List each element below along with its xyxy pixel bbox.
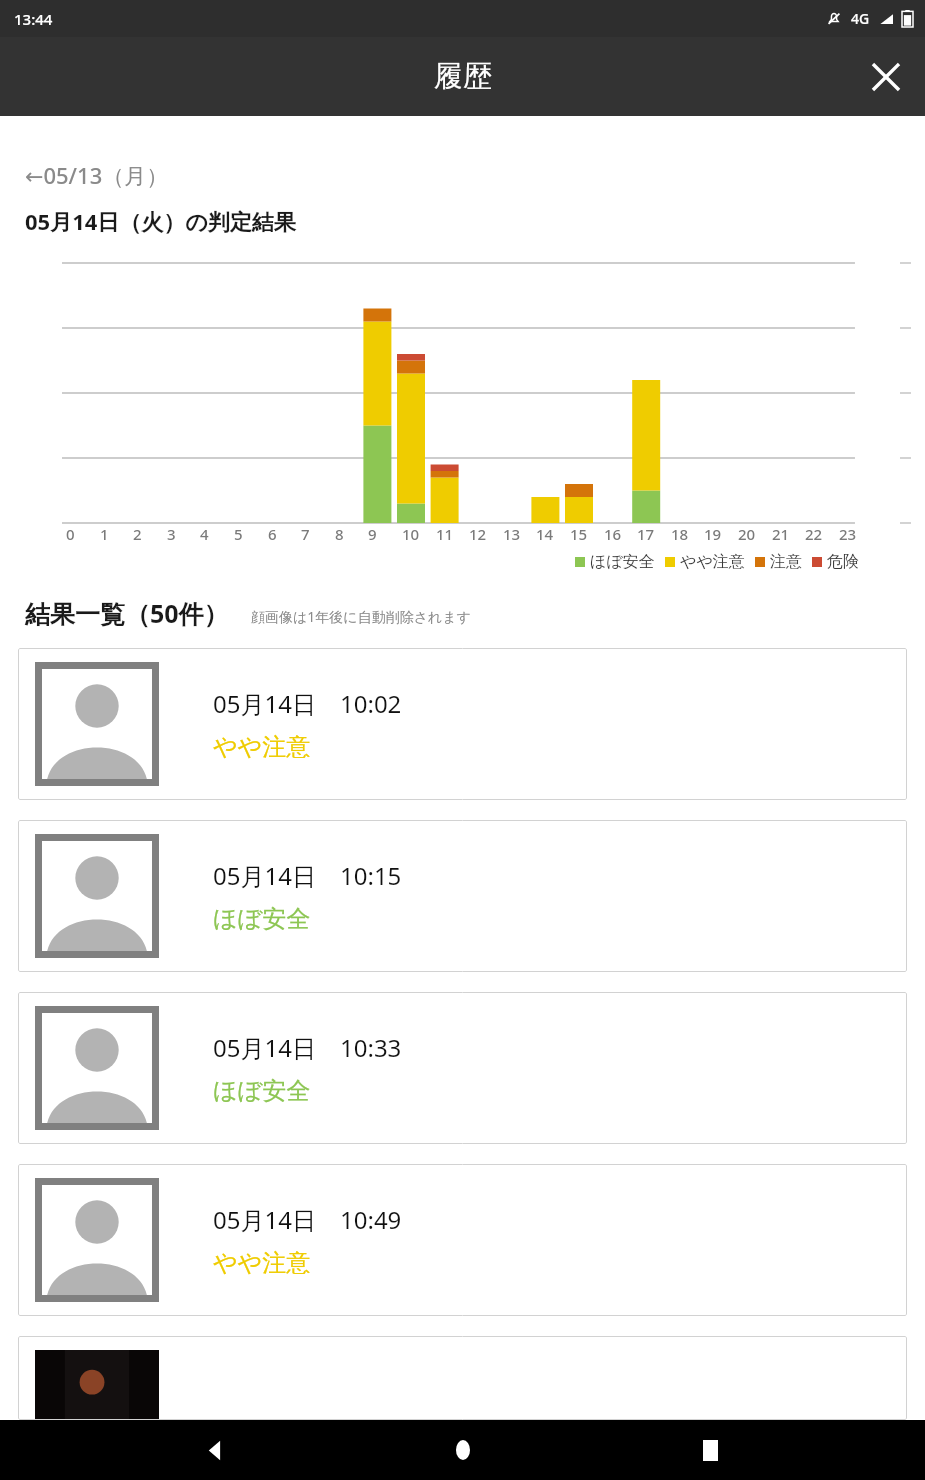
staticText: 17 — [637, 524, 655, 544]
staticText: 7 — [301, 524, 319, 544]
staticText: 18 — [671, 524, 689, 544]
staticText: 危険 — [827, 552, 859, 572]
staticText: 10:49 — [340, 1203, 402, 1236]
staticText: 10:33 — [340, 1031, 402, 1064]
staticText: 履歴 — [434, 58, 492, 95]
staticText: 19 — [704, 524, 722, 544]
button[interactable]: 05月14日 — [18, 820, 907, 972]
button[interactable]: 05月14日 — [18, 648, 907, 800]
button[interactable]: 戻る — [183, 1420, 247, 1480]
staticText: 6 — [268, 524, 286, 544]
staticText: 21 — [772, 524, 790, 544]
staticText: 0 — [66, 524, 84, 544]
staticText: 10:02 — [340, 687, 402, 720]
staticText: 13 — [503, 524, 521, 544]
button[interactable]: 05月14日 — [18, 1164, 907, 1316]
button[interactable]: 最近のアプリ — [678, 1420, 742, 1480]
staticText: 12 — [469, 524, 487, 544]
staticText: 05月14日 — [213, 1203, 316, 1236]
staticText: ほぼ安全 — [590, 552, 655, 572]
staticText: 結果一覧（50件） — [25, 596, 229, 630]
staticText: 05月14日 — [213, 687, 316, 720]
staticText: 11 — [436, 524, 454, 544]
staticText: 10:15 — [340, 859, 402, 892]
staticText: 1 — [100, 524, 118, 544]
staticText: 22 — [805, 524, 823, 544]
staticText: 10 — [402, 524, 420, 544]
staticText: 05月14日（火）の判定結果 — [25, 206, 296, 236]
staticText: やや注意 — [213, 732, 311, 762]
staticText: ほぼ安全 — [213, 1076, 311, 1106]
staticText: 9 — [368, 524, 386, 544]
staticText: 05月14日 — [213, 859, 316, 892]
button[interactable]: ホーム — [431, 1420, 495, 1480]
button[interactable] — [18, 1336, 907, 1420]
staticText: 13:44 — [14, 9, 53, 29]
staticText: 16 — [604, 524, 622, 544]
staticText: やや注意 — [213, 1248, 311, 1278]
staticText: 4G — [851, 9, 870, 28]
staticText: 注意 — [770, 552, 802, 572]
staticText: ほぼ安全 — [213, 904, 311, 934]
staticText: ←05/13（月） — [25, 160, 169, 190]
button[interactable]: 閉じる — [855, 46, 917, 108]
staticText: 2 — [133, 524, 151, 544]
staticText: 4 — [200, 524, 218, 544]
staticText: 8 — [335, 524, 353, 544]
staticText: 15 — [570, 524, 588, 544]
staticText: 顔画像は1年後に自動削除されます — [251, 607, 471, 626]
button[interactable]: 05月14日 — [18, 992, 907, 1144]
staticText: 05月14日 — [213, 1031, 316, 1064]
staticText: 3 — [167, 524, 185, 544]
staticText: 20 — [738, 524, 756, 544]
staticText: やや注意 — [680, 552, 745, 572]
staticText: 23 — [839, 524, 857, 544]
staticText: 14 — [536, 524, 554, 544]
button[interactable]: ←05/13（月） — [25, 160, 169, 190]
staticText: 5 — [234, 524, 252, 544]
